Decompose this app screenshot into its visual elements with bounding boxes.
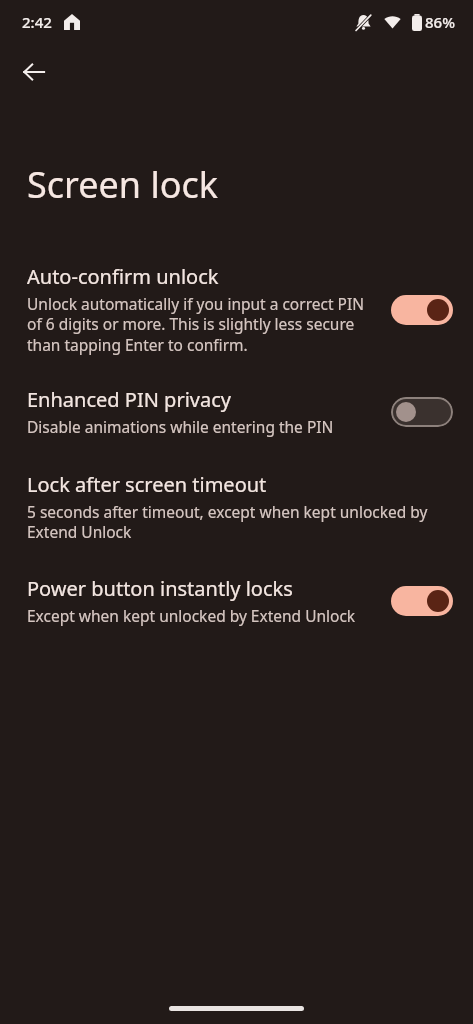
button[interactable]: Toggle off <box>391 397 453 427</box>
button[interactable]: Back <box>10 48 58 96</box>
staticText: Unlock automatically if you input a corr… <box>27 293 375 356</box>
staticText: Screen lock <box>27 160 218 209</box>
button[interactable]: Power button instantly locks <box>0 571 473 630</box>
staticText: Lock after screen timeout <box>27 471 267 498</box>
staticText: Except when kept unlocked by Extend Unlo… <box>27 605 375 626</box>
staticText: Auto-confirm unlock <box>27 263 219 290</box>
button[interactable]: Enhanced PIN privacy <box>0 382 473 441</box>
button[interactable]: Lock after screen timeout <box>0 467 473 547</box>
staticText: 86% <box>425 12 455 32</box>
staticText: Disable animations while entering the PI… <box>27 416 375 437</box>
staticText: Power button instantly locks <box>27 575 293 602</box>
staticText: Enhanced PIN privacy <box>27 386 231 413</box>
button[interactable]: Toggle on <box>391 295 453 325</box>
button[interactable]: Auto-confirm unlock <box>0 259 473 360</box>
staticText: 5 seconds after timeout, except when kep… <box>27 501 447 543</box>
button[interactable]: Toggle on <box>391 586 453 616</box>
staticText: 2:42 <box>22 12 52 32</box>
